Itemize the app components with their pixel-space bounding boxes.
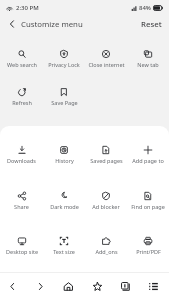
button[interactable]: Text size [43, 232, 85, 255]
button[interactable]: Add page to [127, 141, 169, 164]
staticText: Share [14, 203, 29, 210]
button[interactable]: Desktop site [0, 232, 43, 255]
staticText: Web search [7, 61, 37, 68]
button[interactable]: Close internet [85, 45, 127, 68]
staticText: History [55, 157, 74, 164]
button[interactable]: Home [60, 273, 76, 300]
staticText: Find on page [131, 203, 165, 210]
button[interactable]: Refresh [0, 83, 43, 106]
button[interactable]: Tabs [117, 273, 133, 300]
staticText: Desktop site [6, 248, 38, 255]
button[interactable]: New tab [127, 45, 169, 68]
button[interactable]: Back [4, 273, 20, 300]
button[interactable]: Ad blocker [85, 187, 127, 210]
staticText: 84% [139, 4, 151, 12]
staticText: Downloads [7, 157, 36, 164]
staticText: Privacy Lock [48, 61, 80, 68]
button[interactable]: Privacy Lock [43, 45, 85, 68]
button[interactable]: Downloads [0, 141, 43, 164]
button[interactable]: Forward [32, 273, 48, 300]
staticText: Refresh [12, 99, 32, 106]
staticText: Print/PDF [136, 248, 161, 255]
button[interactable]: Reset [139, 16, 164, 33]
staticText: Add_ons [95, 248, 118, 255]
button[interactable]: Bookmarks [89, 273, 105, 300]
staticText: 2:30 PM [16, 4, 39, 12]
staticText: Ad blocker [92, 203, 120, 210]
button[interactable]: Print/PDF [127, 232, 169, 255]
staticText: Text size [53, 248, 75, 255]
staticText: Customize menu [21, 19, 83, 30]
button[interactable]: Web search [0, 45, 43, 68]
button[interactable]: Save Page [43, 83, 85, 106]
button[interactable]: Menu [145, 273, 161, 300]
staticText: Add page to [132, 157, 164, 164]
button[interactable]: Share [0, 187, 43, 210]
staticText: Reset [141, 19, 162, 30]
button[interactable]: Dark mode [43, 187, 85, 210]
button[interactable]: Back [4, 16, 20, 32]
staticText: Saved pages [90, 157, 123, 164]
button[interactable]: History [43, 141, 85, 164]
button[interactable]: Find on page [127, 187, 169, 210]
staticText: Dark mode [50, 203, 79, 210]
button[interactable]: Add_ons [85, 232, 127, 255]
staticText: Save Page [51, 99, 78, 106]
staticText: New tab [137, 61, 159, 68]
staticText: Close internet [88, 61, 125, 68]
button[interactable]: Saved pages [85, 141, 127, 164]
